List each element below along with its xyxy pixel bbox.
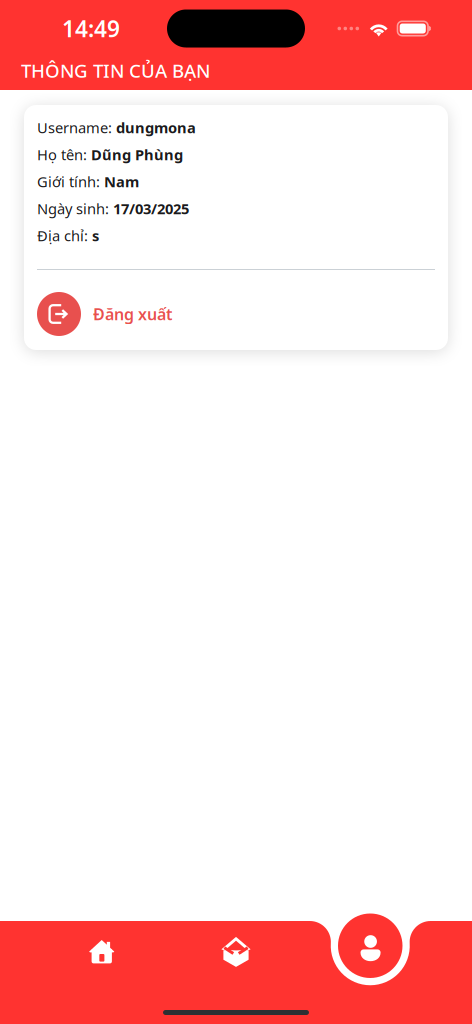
button[interactable]: Trang chủ <box>35 921 169 983</box>
staticText: Họ tên: <box>37 145 91 164</box>
staticText: dungmona <box>116 118 196 137</box>
staticText: Dũng Phùng <box>91 145 183 164</box>
staticText: Nam <box>104 172 139 191</box>
staticText: Ngày sinh: <box>37 199 113 218</box>
button[interactable]: Đơn hàng <box>169 921 303 983</box>
staticText: THÔNG TIN CỦA BẠN <box>21 58 210 83</box>
staticText: Đăng xuất <box>93 303 172 325</box>
staticText: 17/03/2025 <box>113 199 189 218</box>
staticText: Giới tính: <box>37 172 104 191</box>
staticText: s <box>92 226 99 245</box>
button[interactable]: Đăng xuất <box>37 270 435 350</box>
staticText: Username: <box>37 118 116 137</box>
button[interactable]: Tài khoản <box>338 913 402 978</box>
staticText: Địa chỉ: <box>37 226 92 245</box>
staticText: 14:49 <box>62 13 120 43</box>
